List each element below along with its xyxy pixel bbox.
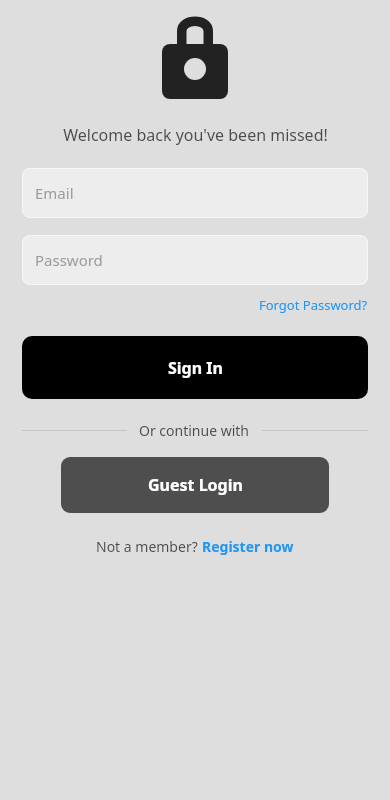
button[interactable]: Register now — [202, 537, 294, 556]
button[interactable]: Email — [22, 168, 368, 218]
staticText: Welcome back you've been missed! — [63, 124, 328, 146]
button[interactable]: Forgot Password? — [259, 296, 368, 314]
staticText: Sign In — [168, 357, 223, 379]
staticText: Or continue with — [139, 421, 250, 440]
button[interactable]: Guest Login — [61, 457, 329, 513]
staticText: Guest Login — [148, 474, 243, 496]
staticText: Password — [35, 250, 103, 270]
staticText: Email — [35, 183, 74, 203]
button[interactable]: Password — [22, 235, 368, 285]
button[interactable]: Sign In — [22, 336, 368, 399]
staticText: Forgot Password? — [259, 296, 368, 314]
staticText: Not a member? — [96, 537, 202, 556]
staticText: Register now — [202, 537, 294, 556]
